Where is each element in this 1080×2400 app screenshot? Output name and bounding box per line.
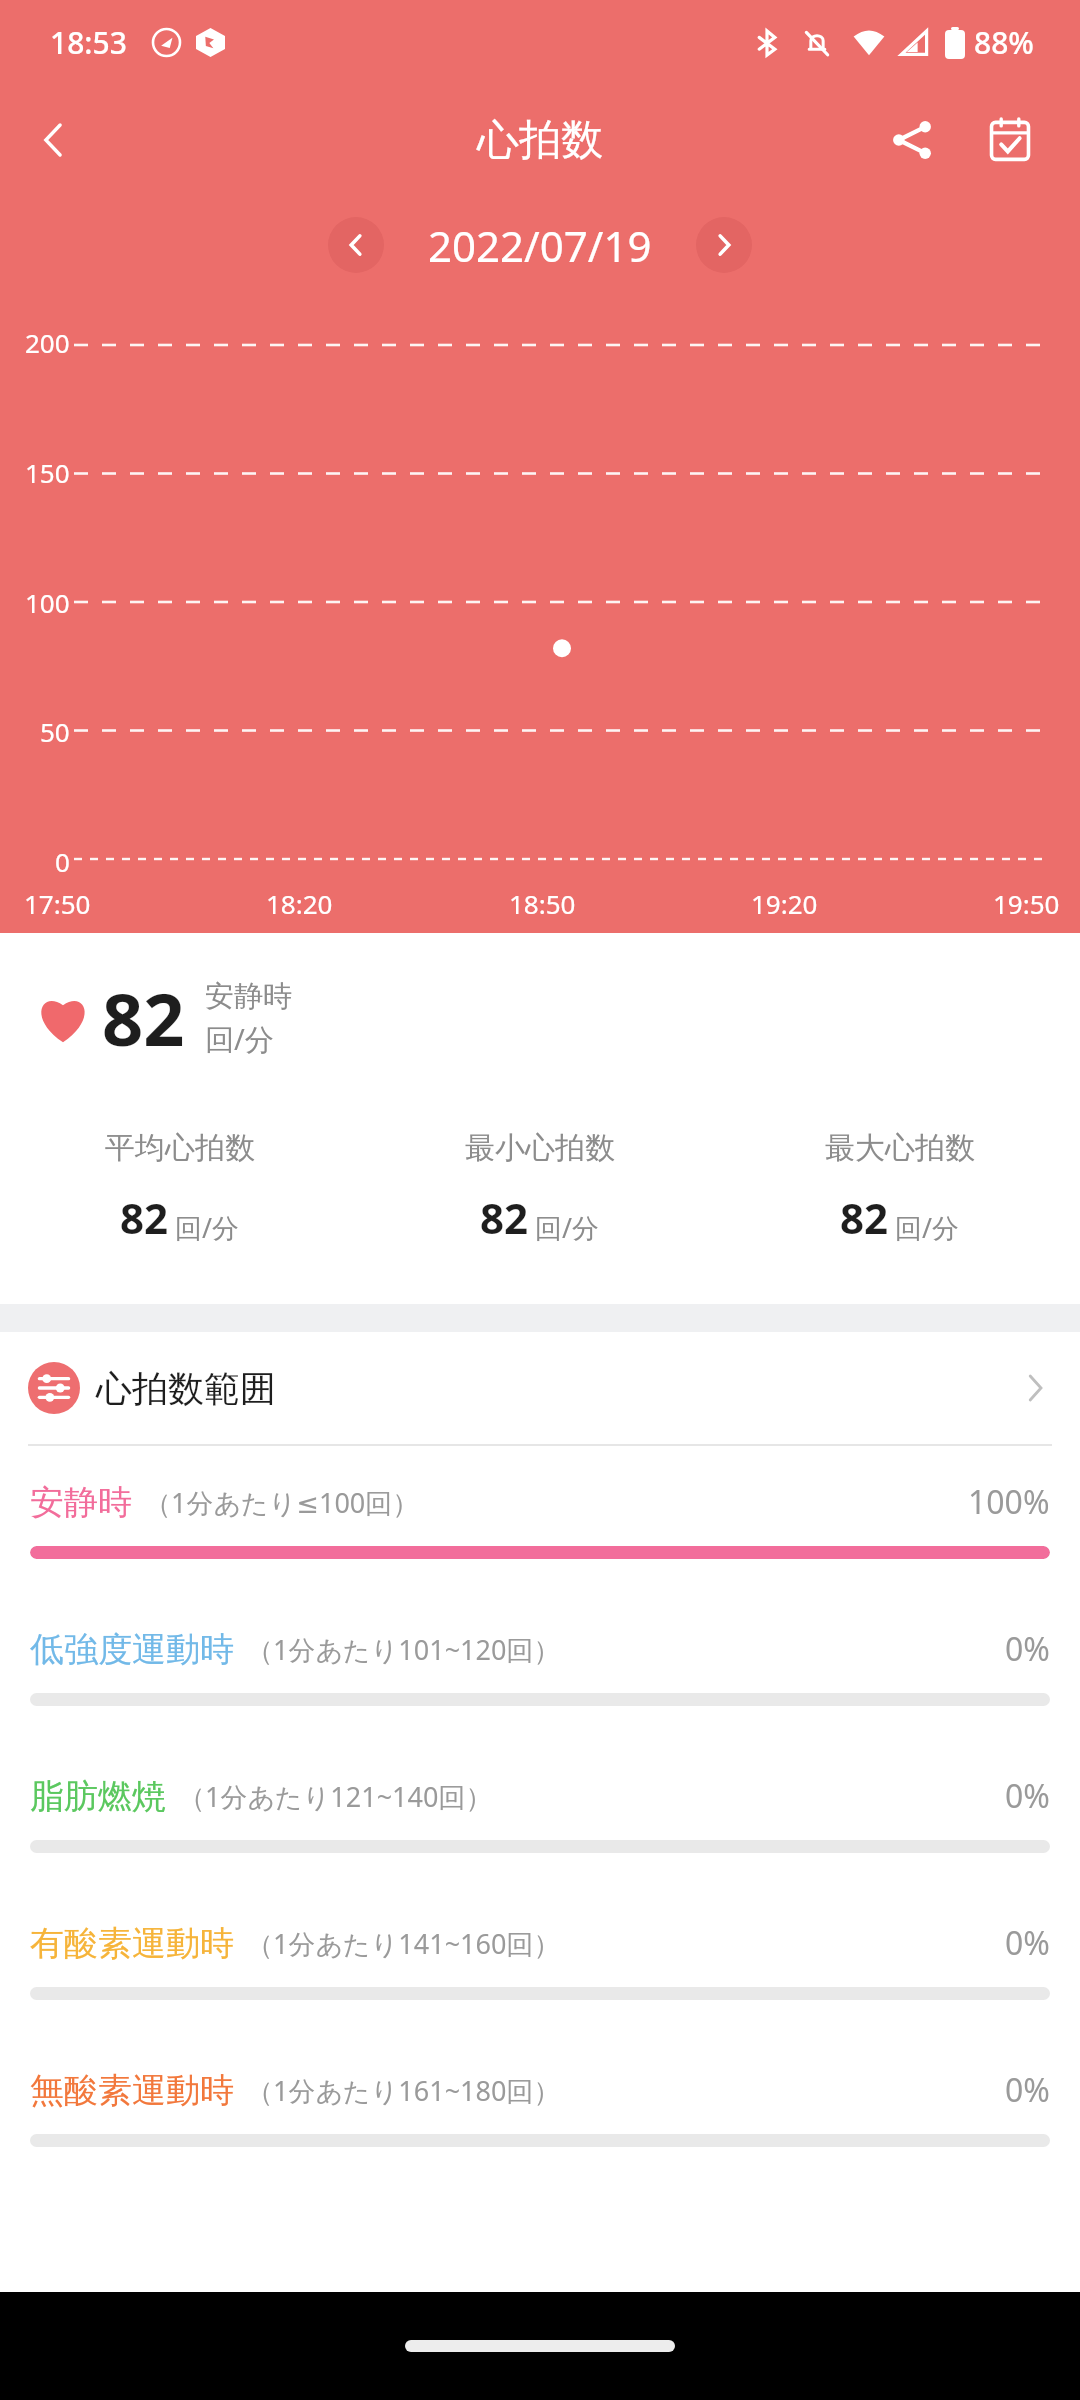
button[interactable]: 前の日 xyxy=(328,217,384,273)
staticText: 82 xyxy=(120,1189,169,1246)
staticText: （1分あたり121~140回） xyxy=(178,1778,493,1815)
button[interactable]: 安静時 xyxy=(0,1446,1080,1593)
staticText: 心拍数範囲 xyxy=(96,1366,276,1411)
staticText: 有酸素運動時 xyxy=(30,1922,234,1965)
staticText: 0% xyxy=(1005,1627,1050,1671)
staticText: 最大心拍数 xyxy=(825,1129,975,1167)
button[interactable]: カレンダー xyxy=(970,100,1050,180)
staticText: 18:53 xyxy=(50,22,127,63)
staticText: 心拍数 xyxy=(477,114,603,167)
button[interactable]: ホーム xyxy=(405,2340,675,2352)
staticText: 82 xyxy=(102,969,185,1067)
staticText: 最小心拍数 xyxy=(465,1129,615,1167)
staticText: 脂肪燃焼 xyxy=(30,1775,166,1818)
staticText: 100% xyxy=(968,1480,1050,1524)
staticText: 無酸素運動時 xyxy=(30,2069,234,2112)
staticText: 82 xyxy=(480,1189,529,1246)
staticText: （1分あたり≤100回） xyxy=(144,1484,420,1521)
button[interactable]: 無酸素運動時 xyxy=(0,2034,1080,2181)
staticText: 19:50 xyxy=(993,886,1060,921)
staticText: 19:20 xyxy=(751,886,818,921)
staticText: 0% xyxy=(1005,1921,1050,1965)
staticText: （1分あたり141~160回） xyxy=(246,1925,561,1962)
button[interactable]: 脂肪燃焼 xyxy=(0,1740,1080,1887)
staticText: 平均心拍数 xyxy=(105,1129,255,1167)
staticText: 0% xyxy=(1005,2068,1050,2112)
staticText: 150 xyxy=(25,455,70,490)
staticText: 0% xyxy=(1005,1774,1050,1818)
staticText: 200 xyxy=(25,325,70,360)
staticText: 安静時 xyxy=(205,978,292,1015)
button[interactable]: 低強度運動時 xyxy=(0,1593,1080,1740)
button[interactable]: 共有 xyxy=(872,100,952,180)
staticText: 回/分 xyxy=(175,1209,240,1246)
staticText: 50 xyxy=(40,714,70,749)
staticText: 回/分 xyxy=(895,1209,960,1246)
staticText: 2022/07/19 xyxy=(428,217,652,274)
staticText: 安静時 xyxy=(30,1481,132,1524)
staticText: 回/分 xyxy=(535,1209,600,1246)
button[interactable]: 次の日 xyxy=(696,217,752,273)
staticText: （1分あたり161~180回） xyxy=(246,2072,561,2109)
staticText: 100 xyxy=(25,585,70,620)
button[interactable]: 心拍数範囲 xyxy=(0,1332,1080,1444)
staticText: 18:50 xyxy=(509,886,576,921)
staticText: 17:50 xyxy=(24,886,91,921)
button[interactable]: 戻る xyxy=(16,102,92,178)
button[interactable]: 有酸素運動時 xyxy=(0,1887,1080,2034)
staticText: 0 xyxy=(55,844,70,879)
staticText: 低強度運動時 xyxy=(30,1628,234,1671)
staticText: 18:20 xyxy=(266,886,333,921)
staticText: 82 xyxy=(840,1189,889,1246)
staticText: 回/分 xyxy=(205,1019,274,1059)
staticText: （1分あたり101~120回） xyxy=(246,1631,561,1668)
staticText: 88% xyxy=(974,22,1034,63)
